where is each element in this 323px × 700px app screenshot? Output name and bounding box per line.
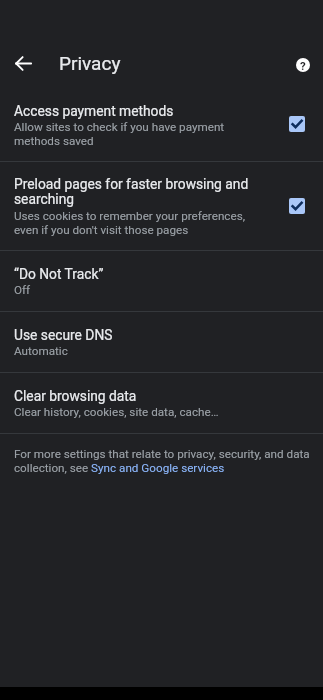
button[interactable]: Clear browsing data bbox=[0, 373, 323, 433]
staticText: Privacy bbox=[59, 52, 121, 74]
staticText: ? bbox=[300, 59, 306, 72]
staticText: Automatic bbox=[14, 344, 68, 358]
button[interactable]: Help bbox=[278, 41, 322, 85]
button[interactable]: “Do Not Track” bbox=[0, 251, 323, 311]
staticText: Preload pages for faster browsing and se… bbox=[14, 176, 255, 208]
staticText: Access payment methods bbox=[14, 103, 174, 119]
staticText: Allow sites to check if you have payment… bbox=[14, 120, 255, 148]
button[interactable]: Use secure DNS bbox=[0, 312, 323, 372]
staticText: Use secure DNS bbox=[14, 327, 113, 343]
staticText: “Do Not Track” bbox=[14, 266, 104, 282]
staticText: For more settings that relate to privacy… bbox=[14, 447, 310, 475]
staticText: Clear history, cookies, site data, cache… bbox=[14, 405, 219, 419]
staticText: Off bbox=[14, 283, 31, 297]
button[interactable]: Preload pages for faster browsing and se… bbox=[0, 162, 323, 250]
staticText: Clear browsing data bbox=[14, 388, 137, 404]
staticText: Uses cookies to remember your preference… bbox=[14, 209, 255, 237]
button[interactable]: Back bbox=[0, 40, 46, 86]
button[interactable]: Access payment methods bbox=[0, 90, 323, 161]
